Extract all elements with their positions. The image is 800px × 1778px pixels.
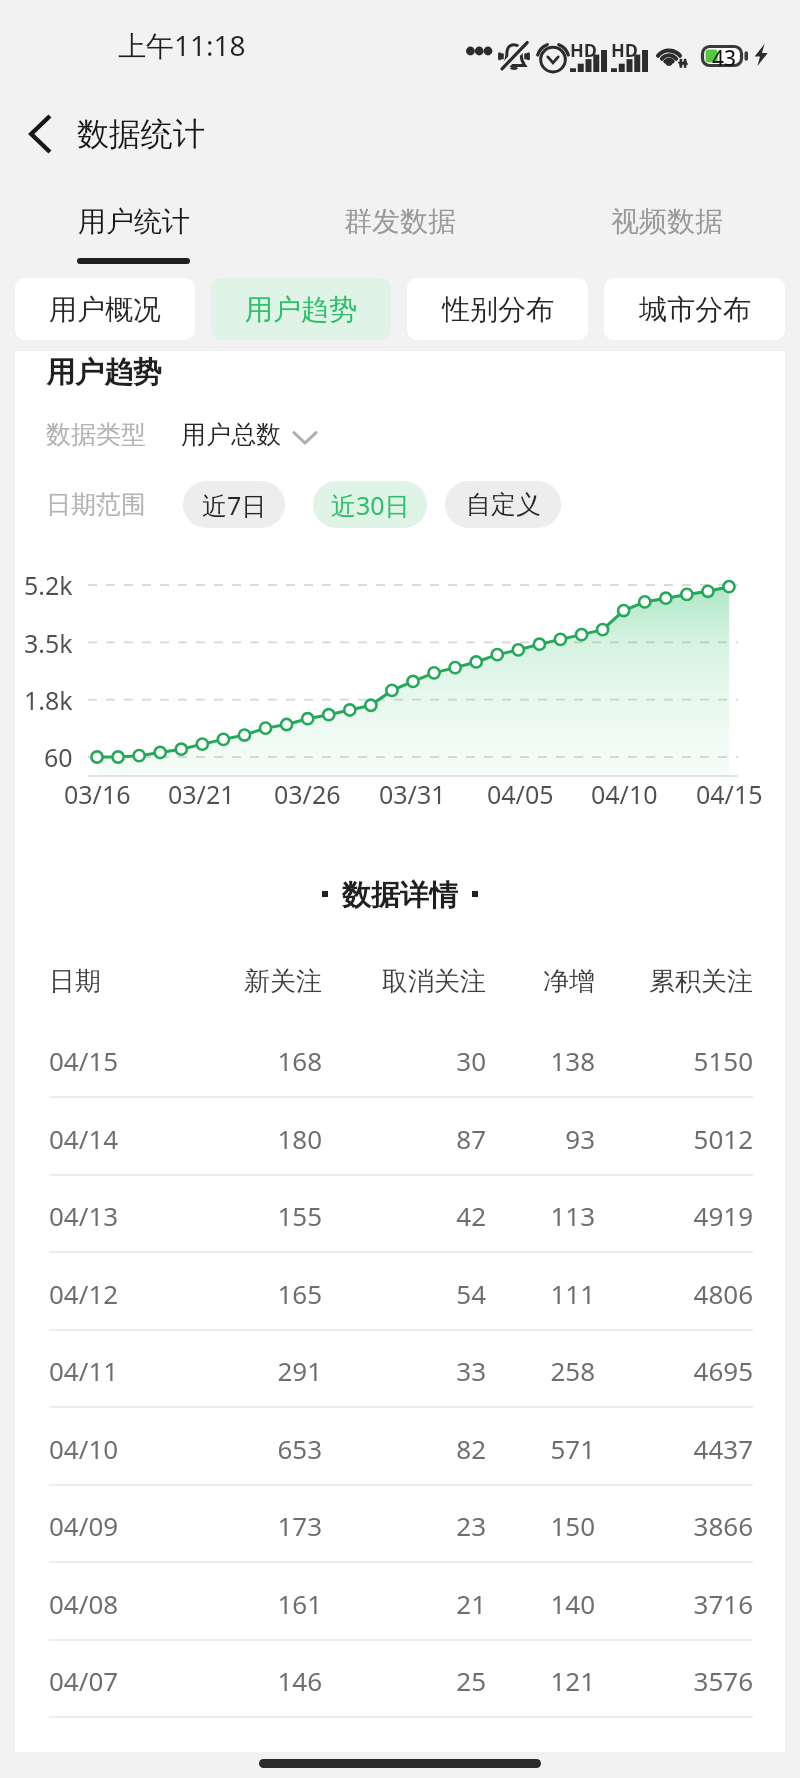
staticText: 4695 <box>603 1353 753 1388</box>
staticText: 04/10 <box>591 777 658 811</box>
staticText: 146 <box>212 1663 322 1698</box>
staticText: 5150 <box>603 1043 753 1078</box>
staticText: 173 <box>212 1508 322 1543</box>
staticText: 城市分布 <box>639 292 751 327</box>
staticText: HD <box>611 38 638 63</box>
staticText: 5012 <box>603 1121 753 1156</box>
staticText: 上午11:18 <box>118 26 246 64</box>
button[interactable]: 群发数据 <box>266 178 533 278</box>
staticText: 04/13 <box>49 1198 129 1233</box>
staticText: 165 <box>212 1276 322 1311</box>
button[interactable]: 近30日 <box>313 481 427 528</box>
button[interactable]: 城市分布 <box>604 278 785 340</box>
staticText: 日期范围 <box>46 489 183 520</box>
staticText: 数据类型 <box>46 419 181 450</box>
staticText: 04/14 <box>49 1121 129 1156</box>
staticText: 03/21 <box>168 777 235 811</box>
staticText: 近7日 <box>202 488 267 522</box>
staticText: 累积关注 <box>603 965 753 998</box>
button[interactable]: 视频数据 <box>533 178 800 278</box>
staticText: 121 <box>485 1663 595 1698</box>
staticText: 03/26 <box>274 777 341 811</box>
staticText: 1.8k <box>24 683 73 717</box>
staticText: 168 <box>212 1043 322 1078</box>
staticText: 04/10 <box>49 1431 129 1466</box>
staticText: 23 <box>336 1508 486 1543</box>
button[interactable]: 性别分布 <box>407 278 588 340</box>
staticText: 291 <box>212 1353 322 1388</box>
staticText: 82 <box>336 1431 486 1466</box>
staticText: 43 <box>712 44 737 73</box>
staticText: 4919 <box>603 1198 753 1233</box>
staticText: 21 <box>336 1586 486 1621</box>
staticText: 性别分布 <box>442 292 554 327</box>
staticText: 30 <box>336 1043 486 1078</box>
staticText: 155 <box>212 1198 322 1233</box>
staticText: 04/08 <box>49 1586 129 1621</box>
staticText: 571 <box>485 1431 595 1466</box>
staticText: 161 <box>212 1586 322 1621</box>
staticText: 5.2k <box>24 568 73 602</box>
staticText: 用户趋势 <box>46 354 162 391</box>
staticText: 04/05 <box>487 777 554 811</box>
staticText: 180 <box>212 1121 322 1156</box>
staticText: 150 <box>485 1508 595 1543</box>
staticText: 用户统计 <box>78 204 190 239</box>
staticText: 04/15 <box>49 1043 129 1078</box>
staticText: 视频数据 <box>611 204 723 239</box>
staticText: 03/31 <box>379 777 446 811</box>
staticText: 04/07 <box>49 1663 129 1698</box>
staticText: 用户趋势 <box>245 292 357 327</box>
staticText: 新关注 <box>212 965 322 998</box>
staticText: 4806 <box>603 1276 753 1311</box>
staticText: 数据详情 <box>342 877 458 911</box>
button[interactable]: 用户趋势 <box>211 278 391 340</box>
button[interactable]: 自定义 <box>445 481 561 528</box>
staticText: 用户概况 <box>49 292 161 327</box>
staticText: 03/16 <box>64 777 131 811</box>
staticText: 93 <box>485 1121 595 1156</box>
staticText: 258 <box>485 1353 595 1388</box>
staticText: 33 <box>336 1353 486 1388</box>
staticText: 3866 <box>603 1508 753 1543</box>
button[interactable]: 近7日 <box>183 481 285 528</box>
staticText: 04/09 <box>49 1508 129 1543</box>
staticText: 42 <box>336 1198 486 1233</box>
staticText: 04/11 <box>49 1353 129 1388</box>
staticText: 数据统计 <box>77 114 205 154</box>
staticText: 653 <box>212 1431 322 1466</box>
staticText: 日期 <box>49 965 129 998</box>
staticText: 113 <box>485 1198 595 1233</box>
staticText: HD <box>570 38 597 63</box>
staticText: 04/12 <box>49 1276 129 1311</box>
button[interactable]: 用户总数 <box>181 419 281 450</box>
staticText: 25 <box>336 1663 486 1698</box>
staticText: 3576 <box>603 1663 753 1698</box>
staticText: 60 <box>44 740 73 774</box>
staticText: 04/15 <box>696 777 763 811</box>
button[interactable]: 用户概况 <box>15 278 195 340</box>
staticText: 140 <box>485 1586 595 1621</box>
staticText: 群发数据 <box>344 204 456 239</box>
staticText: 3.5k <box>24 626 73 660</box>
staticText: 自定义 <box>466 489 541 520</box>
staticText: 近30日 <box>331 488 410 522</box>
staticText: 87 <box>336 1121 486 1156</box>
staticText: 138 <box>485 1043 595 1078</box>
staticText: 54 <box>336 1276 486 1311</box>
button[interactable]: Back <box>10 104 70 164</box>
staticText: 净增 <box>485 965 595 998</box>
staticText: 取消关注 <box>336 965 486 998</box>
button[interactable]: 用户统计 <box>0 178 266 278</box>
staticText: 111 <box>485 1276 595 1311</box>
staticText: 3716 <box>603 1586 753 1621</box>
staticText: 4437 <box>603 1431 753 1466</box>
